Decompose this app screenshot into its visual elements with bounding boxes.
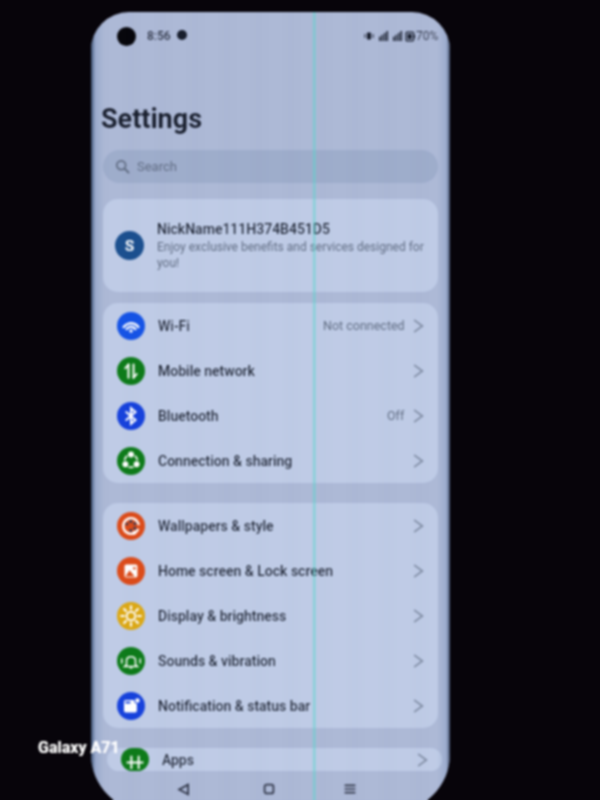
staticText: Connection & sharing	[158, 453, 293, 469]
staticText: 8:56	[147, 29, 171, 43]
staticText: NickName111H374B451D5	[157, 221, 330, 237]
staticText: Mobile network	[158, 363, 255, 379]
button[interactable]: Home	[253, 774, 285, 800]
button[interactable]: Sounds & vibration	[103, 638, 438, 683]
staticText: Wi-Fi	[158, 318, 190, 334]
button[interactable]: Display & brightness	[103, 593, 438, 638]
button[interactable]: Wallpapers & style	[103, 503, 438, 548]
button[interactable]: Home screen & Lock screen	[103, 548, 438, 593]
staticText: Apps	[162, 752, 194, 768]
button[interactable]: Bluetooth	[103, 393, 438, 438]
staticText: Display & brightness	[158, 608, 287, 624]
button[interactable]: Apps	[107, 748, 442, 771]
staticText: 70%	[416, 29, 439, 43]
staticText: Notification & status bar	[158, 698, 311, 714]
button[interactable]: Notification & status bar	[103, 683, 438, 728]
button[interactable]: Search	[103, 150, 438, 183]
staticText: Enjoy exclusive benefits and services de…	[157, 240, 434, 270]
staticText: Settings	[101, 103, 203, 135]
staticText: S	[125, 237, 135, 255]
staticText: Galaxy A71	[38, 738, 120, 757]
button[interactable]: Mobile network	[103, 348, 438, 393]
button[interactable]: Back	[167, 774, 199, 800]
button[interactable]: Wi-Fi	[103, 303, 438, 348]
staticText: Home screen & Lock screen	[158, 563, 334, 579]
button[interactable]: Recent apps	[334, 774, 366, 800]
button[interactable]: Connection & sharing	[103, 438, 438, 483]
staticText: Search	[137, 159, 177, 174]
staticText: Bluetooth	[158, 408, 219, 424]
button[interactable]: S	[103, 199, 438, 292]
staticText: Wallpapers & style	[158, 518, 274, 534]
staticText: Not connected	[323, 318, 405, 333]
staticText: Off	[387, 408, 405, 423]
staticText: Sounds & vibration	[158, 653, 276, 669]
